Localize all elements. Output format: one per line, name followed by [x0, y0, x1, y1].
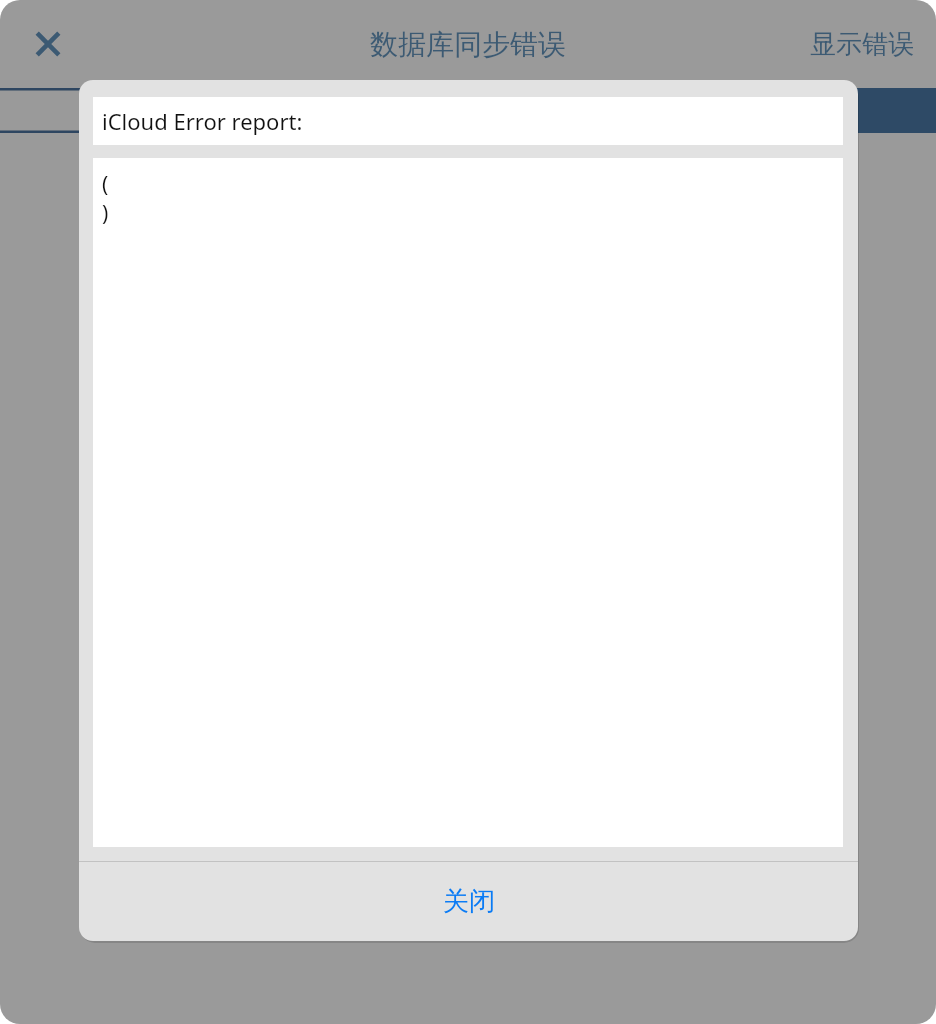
- staticText: 关闭: [443, 885, 495, 918]
- staticText: (: [102, 170, 109, 199]
- staticText: 数据库同步错误: [370, 27, 566, 62]
- staticText: 显示错误: [810, 28, 914, 61]
- staticText: ): [102, 199, 109, 228]
- button[interactable]: 显示错误: [788, 14, 936, 75]
- staticText: iCloud Error report:: [102, 106, 303, 136]
- button[interactable]: 关闭: [79, 862, 858, 941]
- button[interactable]: [482, 88, 936, 133]
- button[interactable]: [0, 88, 454, 133]
- button[interactable]: Close: [14, 10, 82, 78]
- button[interactable]: iCloud Error report:: [93, 97, 843, 145]
